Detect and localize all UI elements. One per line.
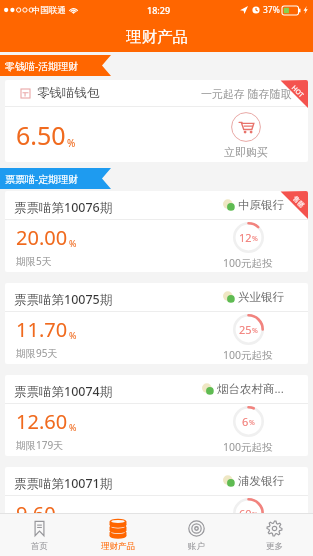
staticText: 一元起存 随存随取 (201, 86, 292, 101)
staticText: 票票喵第10076期 (14, 199, 113, 216)
staticText: 9.60 (16, 500, 56, 527)
staticText: 浦发银行 (238, 474, 284, 488)
staticText: 100元起投 (223, 348, 273, 362)
staticText: HOT (290, 83, 306, 100)
button[interactable]: 票票喵第10076期 (5, 191, 308, 272)
staticText: 期限95天 (16, 346, 58, 360)
staticText: 兴业银行 (238, 290, 284, 304)
staticText: 烟台农村商... (217, 381, 284, 397)
staticText: 零钱喵-活期理财 (5, 59, 79, 73)
staticText: 100元起投 (223, 440, 273, 454)
staticText: 25 (239, 322, 252, 337)
staticText: 立即购买 (224, 145, 268, 159)
staticText: 票票喵第10075期 (14, 291, 113, 308)
staticText: 期限5天 (16, 254, 52, 268)
staticText: 零钱喵钱包 (37, 85, 100, 101)
staticText: % (252, 326, 258, 336)
staticText: 60 (239, 506, 252, 521)
staticText: % (252, 510, 258, 520)
staticText: 账户 (188, 541, 205, 552)
staticText: 100元起投 (223, 256, 273, 270)
staticText: % (69, 329, 77, 341)
staticText: 期限90天 (16, 530, 58, 544)
button[interactable]: 票票喵第10071期 (5, 467, 308, 548)
staticText: 中国联通 (32, 5, 66, 16)
button[interactable]: 零钱喵钱包 (5, 80, 308, 162)
staticText: 6.50 (16, 118, 66, 152)
staticText: 11.70 (16, 316, 68, 343)
staticText: 理财产品 (126, 27, 188, 47)
button[interactable]: 票票喵第10074期 (5, 375, 308, 456)
staticText: 12 (239, 230, 252, 245)
staticText: 100元起投 (223, 532, 273, 546)
staticText: 18:29 (147, 4, 171, 16)
staticText: 票票喵-定期理财 (5, 172, 79, 186)
staticText: 首页 (31, 541, 48, 552)
button[interactable]: 更多 (235, 514, 313, 556)
button[interactable]: 票票喵第10075期 (5, 283, 308, 364)
staticText: 中原银行 (238, 198, 284, 212)
staticText: 20.00 (16, 224, 68, 251)
staticText: % (252, 234, 258, 244)
staticText: 37% (263, 4, 280, 16)
staticText: % (249, 418, 255, 428)
staticText: 更多 (266, 541, 283, 552)
staticText: % (69, 421, 77, 433)
button[interactable]: 理财产品 (79, 514, 157, 556)
staticText: % (67, 136, 76, 150)
staticText: 理财产品 (101, 541, 135, 552)
staticText: % (57, 513, 65, 525)
staticText: % (69, 237, 77, 249)
staticText: 12.60 (16, 408, 68, 435)
button[interactable]: 首页 (0, 514, 79, 556)
staticText: 票票喵第10071期 (14, 475, 113, 492)
staticText: 6 (242, 414, 249, 429)
button[interactable]: 账户 (157, 514, 235, 556)
staticText: 售罄 (291, 195, 306, 209)
staticText: 期限179天 (16, 438, 64, 452)
staticText: 票票喵第10074期 (14, 383, 113, 400)
